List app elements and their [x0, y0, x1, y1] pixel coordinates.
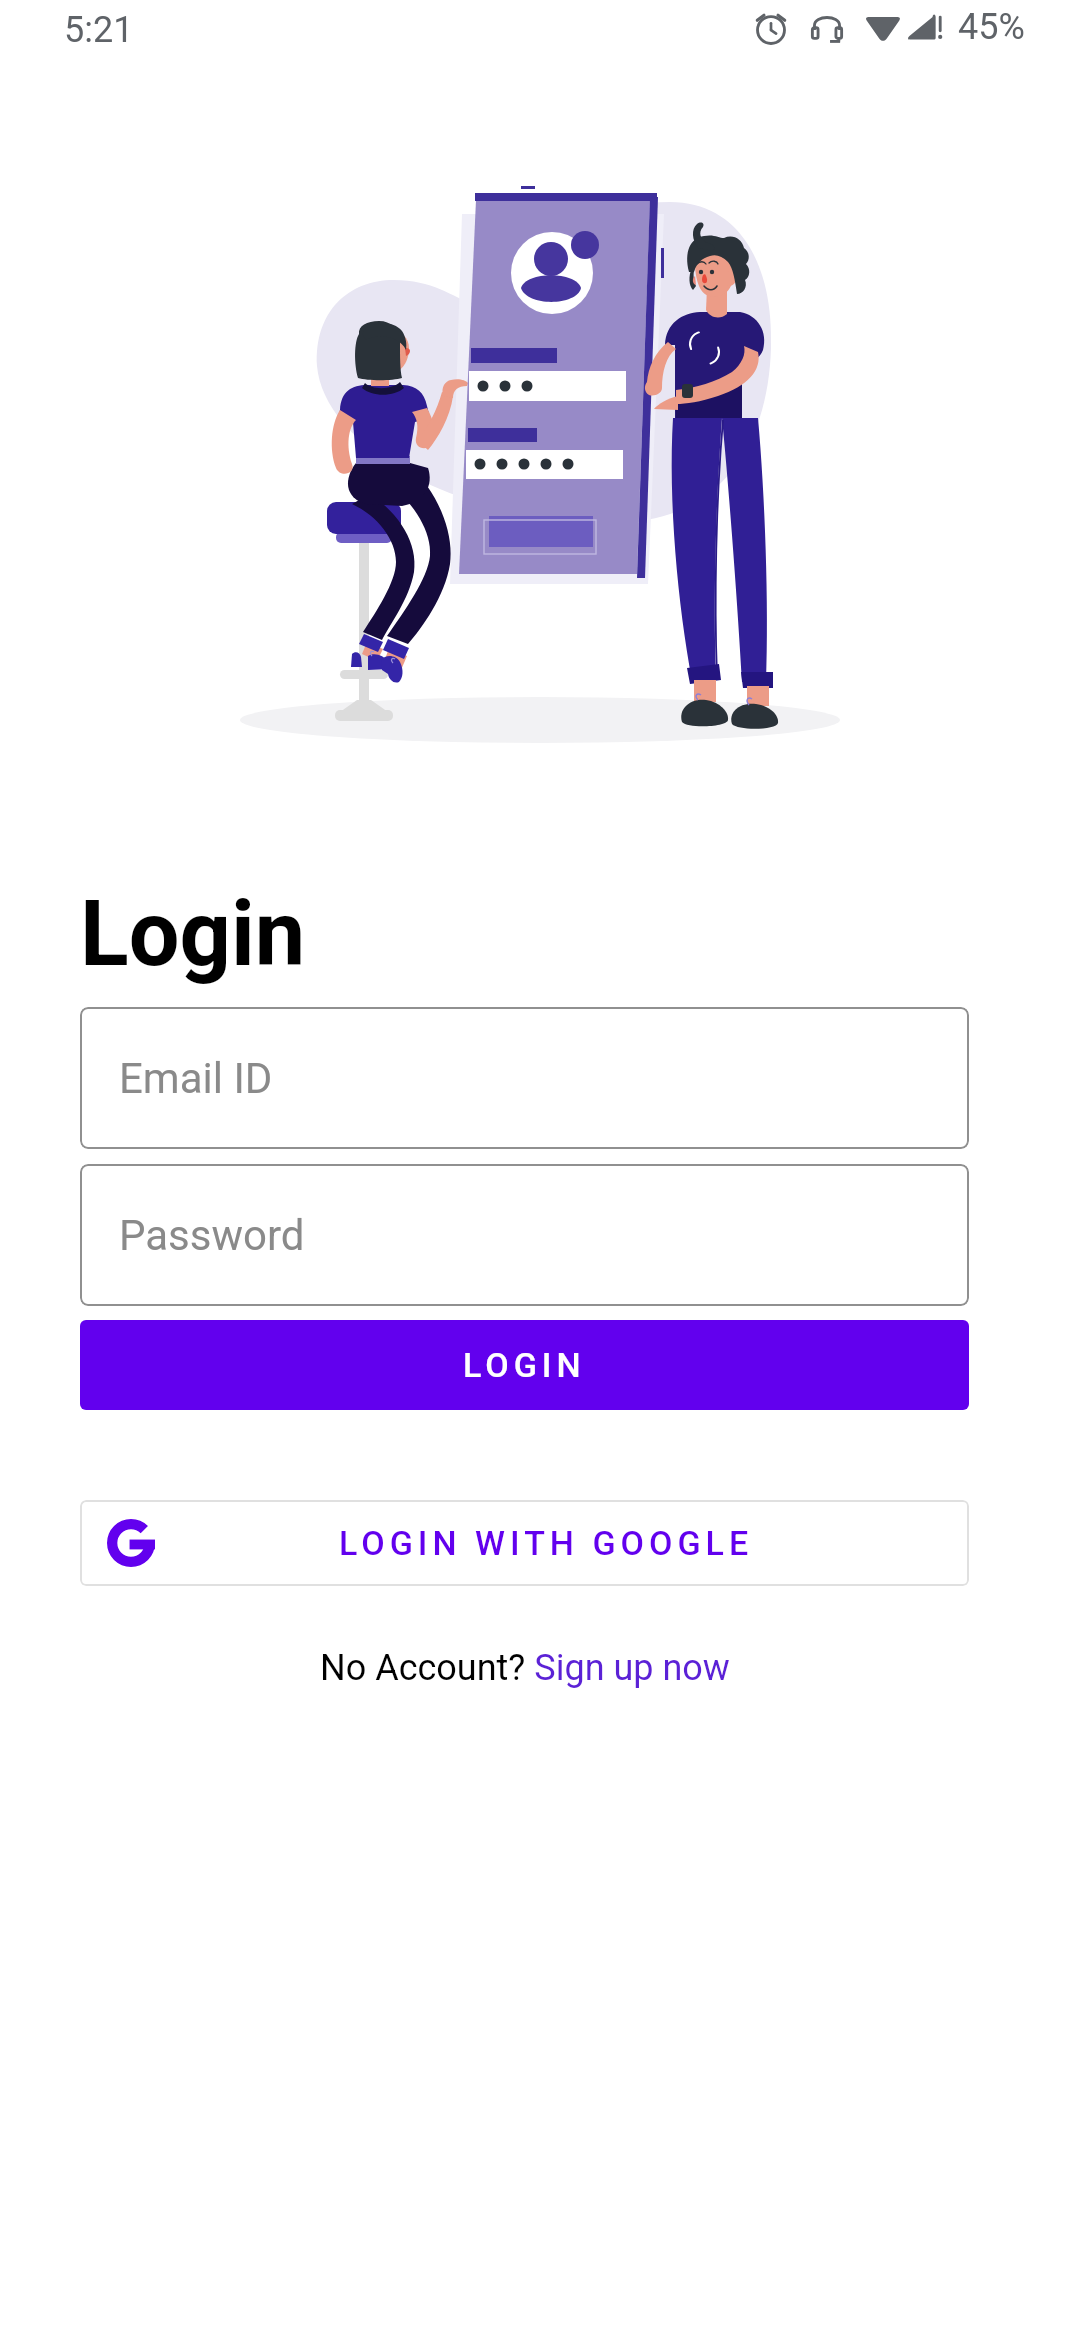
staticText: LOGIN WITH GOOGLE [339, 1523, 754, 1563]
staticText: Login [80, 882, 306, 987]
button[interactable]: Email ID [80, 1007, 969, 1149]
other: Headset connected [808, 8, 846, 46]
other: Google [107, 1519, 155, 1567]
staticText: 45% [958, 6, 1025, 48]
button[interactable]: Password [80, 1164, 969, 1306]
staticText: LOGIN [463, 1345, 586, 1385]
other: Wi-Fi [864, 8, 902, 46]
staticText: Password [119, 1211, 305, 1260]
button[interactable]: No Account? Sign up now [320, 1647, 730, 1689]
button[interactable]: LOGIN [80, 1320, 969, 1410]
other: Login illustration [0, 0, 1080, 760]
staticText: Email ID [119, 1054, 273, 1103]
other: Alarm set [752, 8, 790, 46]
other: Mobile signal [906, 8, 944, 46]
button[interactable]: Google [80, 1500, 969, 1586]
staticText: 5:21 [64, 9, 134, 51]
